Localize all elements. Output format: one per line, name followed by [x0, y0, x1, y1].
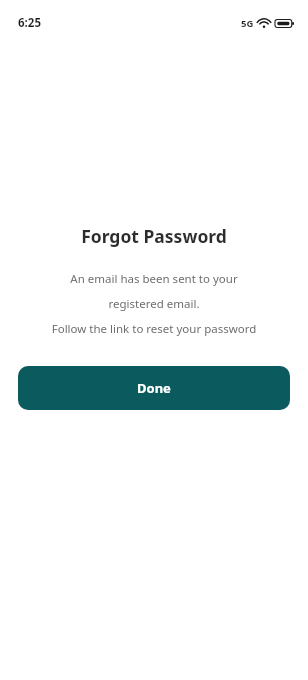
- staticText: Forgot Password: [0, 224, 308, 248]
- button[interactable]: Done: [18, 366, 290, 410]
- staticText: Done: [137, 379, 171, 397]
- staticText: An email has been sent to your registere…: [18, 271, 290, 337]
- staticText: 6:25: [18, 15, 41, 31]
- staticText: 5G: [241, 17, 254, 30]
